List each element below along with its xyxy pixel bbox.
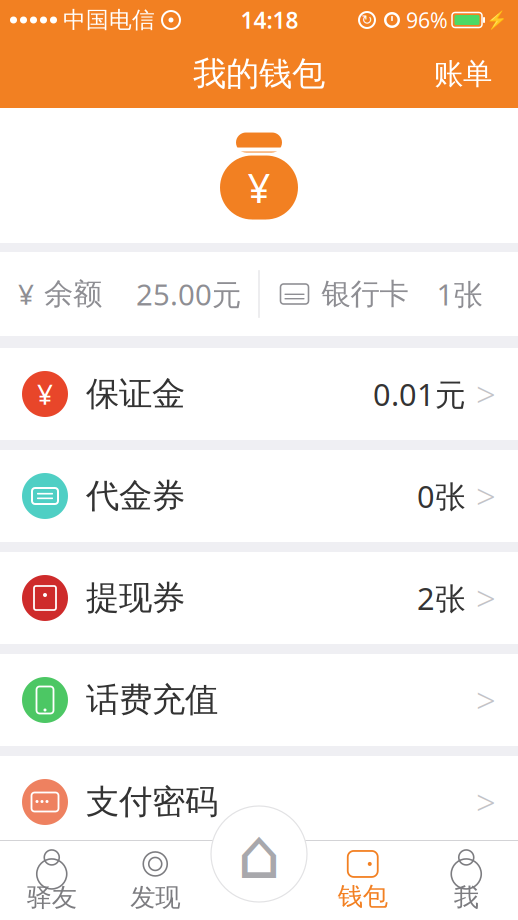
staticText: > bbox=[476, 677, 496, 723]
staticText: 我的钱包 bbox=[193, 53, 325, 94]
staticText: 14:18 bbox=[240, 5, 298, 35]
button[interactable]: 提现券 bbox=[0, 552, 518, 644]
button[interactable]: 支付密码 bbox=[0, 756, 518, 848]
button[interactable]: 钱包 bbox=[311, 841, 414, 919]
staticText: 余额 bbox=[44, 276, 102, 312]
staticText: > bbox=[476, 575, 496, 621]
staticText: > bbox=[476, 371, 496, 417]
staticText: 0.01元 bbox=[373, 374, 466, 414]
staticText: 保证金 bbox=[86, 373, 185, 414]
staticText: 钱包 bbox=[338, 881, 388, 912]
staticText: > bbox=[476, 779, 496, 825]
button[interactable]: 账单 bbox=[418, 48, 508, 100]
staticText: ¥ bbox=[247, 161, 270, 214]
staticText: 账单 bbox=[434, 56, 492, 92]
button[interactable]: 发现 bbox=[103, 841, 207, 919]
staticText: 0张 bbox=[417, 476, 466, 516]
staticText: 2张 bbox=[417, 578, 466, 618]
button[interactable]: 驿友 bbox=[0, 841, 103, 919]
staticText: 提现券 bbox=[86, 577, 185, 618]
button[interactable]: 我 bbox=[414, 841, 518, 919]
button[interactable]: ¥ bbox=[0, 348, 518, 440]
staticText: 支付密码 bbox=[86, 781, 218, 822]
staticText: ⌂ bbox=[237, 815, 281, 893]
staticText: 25.00元 bbox=[136, 274, 241, 313]
staticText: ⚡ bbox=[486, 10, 508, 30]
staticText: ¥ bbox=[18, 275, 34, 313]
staticText: 驿友 bbox=[27, 882, 77, 913]
staticText: 话费充值 bbox=[86, 679, 218, 720]
staticText: 我 bbox=[454, 882, 479, 913]
button[interactable]: ¥ bbox=[0, 252, 258, 336]
button[interactable]: 银行卡 bbox=[259, 252, 518, 336]
button[interactable]: 话费充值 bbox=[0, 654, 518, 746]
staticText: 96% bbox=[406, 6, 448, 34]
staticText: > bbox=[476, 473, 496, 519]
button[interactable]: 首页 bbox=[209, 804, 309, 904]
staticText: ↻ bbox=[361, 12, 372, 27]
staticText: 1张 bbox=[436, 274, 482, 313]
staticText: 发现 bbox=[130, 882, 180, 913]
staticText: ¥ bbox=[37, 375, 53, 413]
button[interactable]: 代金券 bbox=[0, 450, 518, 542]
staticText: 银行卡 bbox=[321, 276, 408, 312]
staticText: 中国电信 bbox=[63, 6, 155, 34]
staticText: 代金券 bbox=[86, 475, 185, 516]
